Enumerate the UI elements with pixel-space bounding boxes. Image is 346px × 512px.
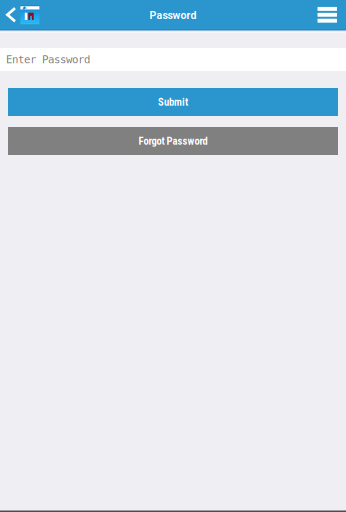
button[interactable]: Back xyxy=(0,0,43,29)
staticText: Enter Password xyxy=(6,53,90,66)
staticText: Forgot Password xyxy=(138,135,207,147)
button[interactable]: Menu xyxy=(308,0,346,29)
button[interactable]: Enter Password xyxy=(0,48,346,71)
staticText: Password xyxy=(149,9,196,21)
staticText: Submit xyxy=(158,96,188,108)
button[interactable]: Submit xyxy=(8,88,338,116)
button[interactable]: Forgot Password xyxy=(8,127,338,155)
